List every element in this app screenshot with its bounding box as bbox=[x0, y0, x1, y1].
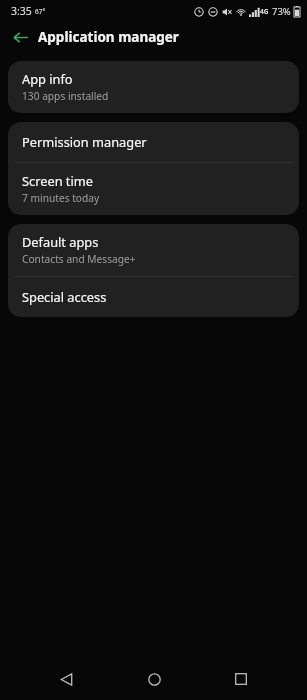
button[interactable]: App info bbox=[8, 61, 299, 113]
staticText: Permission manager bbox=[22, 133, 147, 150]
staticText: 130 apps installed bbox=[22, 89, 109, 103]
staticText: App info bbox=[22, 70, 73, 87]
staticText: Screen time bbox=[22, 172, 93, 189]
staticText: 4G bbox=[260, 7, 269, 16]
button[interactable]: Permission manager bbox=[8, 122, 299, 162]
staticText: 73% bbox=[272, 5, 291, 18]
staticText: 3:35 bbox=[11, 4, 32, 18]
staticText: Contacts and Message+ bbox=[22, 252, 136, 266]
staticText: 67° bbox=[35, 7, 46, 16]
button[interactable]: Screen time bbox=[8, 163, 299, 215]
button[interactable]: Back bbox=[44, 658, 88, 700]
button[interactable]: Back bbox=[5, 22, 35, 52]
button[interactable]: Special access bbox=[8, 277, 299, 317]
staticText: Default apps bbox=[22, 233, 99, 250]
button[interactable]: Recent apps bbox=[219, 658, 263, 700]
staticText: Application manager bbox=[38, 28, 179, 46]
button[interactable]: Home bbox=[132, 658, 176, 700]
staticText: Special access bbox=[22, 288, 107, 305]
button[interactable]: Default apps bbox=[8, 224, 299, 276]
staticText: 7 minutes today bbox=[22, 191, 100, 205]
